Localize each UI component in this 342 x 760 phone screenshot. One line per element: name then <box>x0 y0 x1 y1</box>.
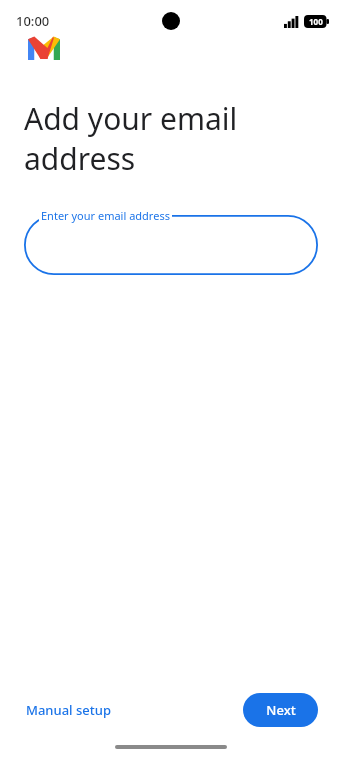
staticText: Next <box>266 701 296 719</box>
other: Gmail <box>28 36 60 60</box>
staticText: 100 <box>309 16 323 27</box>
staticText: Manual setup <box>26 701 111 719</box>
staticText: Enter your email address <box>41 208 170 223</box>
button[interactable]: Manual setup <box>24 695 113 725</box>
staticText: 10:00 <box>16 12 50 30</box>
staticText: Add your email address <box>24 98 238 179</box>
button[interactable]: Next <box>243 693 318 727</box>
button[interactable]: Enter your email address <box>24 215 318 275</box>
